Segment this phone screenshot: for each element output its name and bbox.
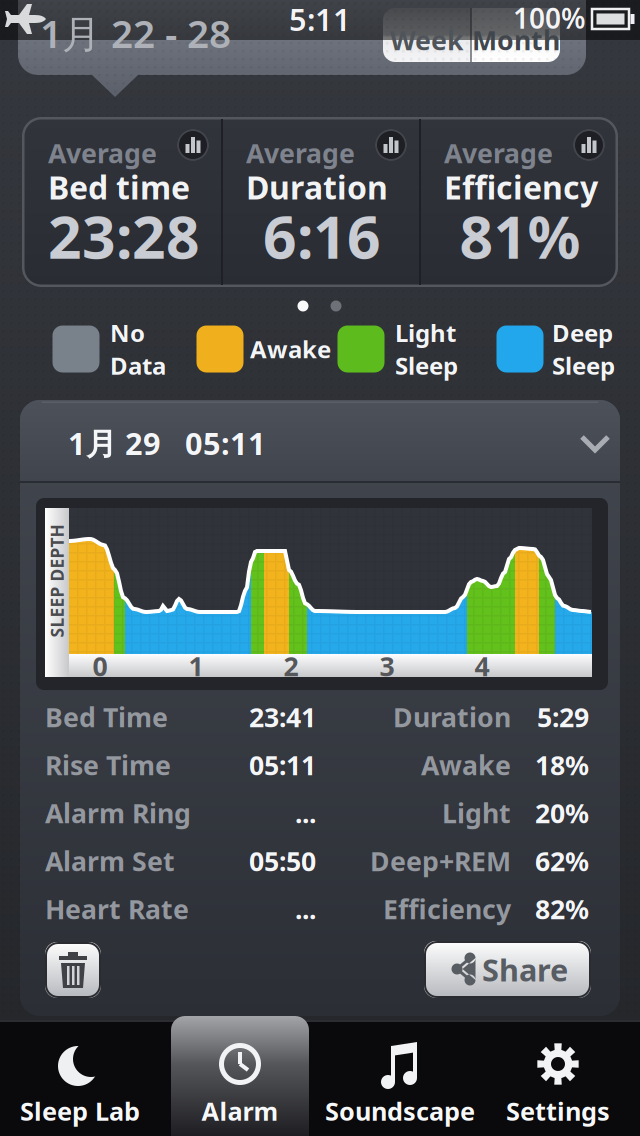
staticText: Awake xyxy=(250,333,331,365)
staticText: 23:41 xyxy=(249,699,316,735)
staticText: 1月 22 - 28 xyxy=(40,7,231,59)
button[interactable] xyxy=(471,8,560,62)
staticText: 5:29 xyxy=(537,699,589,735)
staticText: Alarm xyxy=(201,1094,278,1128)
staticText: 3 xyxy=(379,648,394,684)
staticText: 5:11 xyxy=(289,0,351,39)
button[interactable]: Share xyxy=(424,941,591,998)
staticText: Efficiency xyxy=(444,166,598,208)
button[interactable] xyxy=(573,129,605,161)
staticText: Average xyxy=(48,135,157,171)
staticText: Sleep xyxy=(395,349,458,381)
staticText: SLEEP DEPTH xyxy=(0,569,113,592)
staticText: 1 xyxy=(188,648,203,684)
staticText: Settings xyxy=(506,1094,610,1128)
staticText: Deep+REM xyxy=(370,843,511,879)
staticText: Heart Rate xyxy=(45,891,189,927)
staticText: 05:11 xyxy=(249,747,316,783)
staticText: 6:16 xyxy=(263,197,381,275)
button[interactable] xyxy=(375,129,407,161)
staticText: Soundscape xyxy=(325,1094,475,1128)
staticText: Efficiency xyxy=(383,891,511,927)
staticText: 18% xyxy=(535,747,589,783)
staticText: ... xyxy=(295,795,316,831)
staticText: ... xyxy=(295,891,316,927)
staticText: Light xyxy=(442,795,511,831)
button[interactable] xyxy=(383,8,471,62)
staticText: Average xyxy=(246,135,355,171)
button[interactable]: Soundscape xyxy=(330,1022,470,1136)
staticText: Awake xyxy=(421,747,511,783)
staticText: Week xyxy=(390,22,464,58)
staticText: 100% xyxy=(513,0,586,37)
staticText: 82% xyxy=(535,891,589,927)
staticText: 20% xyxy=(535,795,589,831)
button[interactable] xyxy=(177,129,209,161)
button[interactable]: 1月 29 05:11 xyxy=(20,400,620,482)
button[interactable]: Settings xyxy=(488,1022,628,1136)
staticText: Data xyxy=(110,349,166,381)
staticText: 4 xyxy=(474,648,489,684)
staticText: 0 xyxy=(92,648,107,684)
staticText: No xyxy=(110,317,145,348)
staticText: Bed Time xyxy=(45,699,168,735)
staticText: Month xyxy=(472,22,560,58)
staticText: Light xyxy=(395,317,456,348)
staticText: 23:28 xyxy=(48,197,200,275)
staticText: Sleep Lab xyxy=(20,1094,140,1128)
staticText: 1月 29 05:11 xyxy=(68,423,266,463)
staticText: Sleep xyxy=(552,349,615,381)
staticText: Alarm Ring xyxy=(45,795,191,831)
staticText: Deep xyxy=(552,317,613,348)
staticText: 05:50 xyxy=(249,843,316,879)
staticText: 81% xyxy=(459,197,580,275)
staticText: Duration xyxy=(393,699,511,735)
button[interactable]: Sleep Lab xyxy=(10,1022,150,1136)
staticText: Share xyxy=(482,949,568,990)
staticText: Average xyxy=(444,135,553,171)
staticText: Rise Time xyxy=(45,747,171,783)
button[interactable] xyxy=(45,942,101,998)
staticText: Bed time xyxy=(48,166,190,208)
staticText: 2 xyxy=(283,648,298,684)
button[interactable]: Alarm xyxy=(170,1022,310,1136)
staticText: 62% xyxy=(535,843,589,879)
staticText: Duration xyxy=(246,166,388,208)
staticText: Alarm Set xyxy=(45,843,175,879)
